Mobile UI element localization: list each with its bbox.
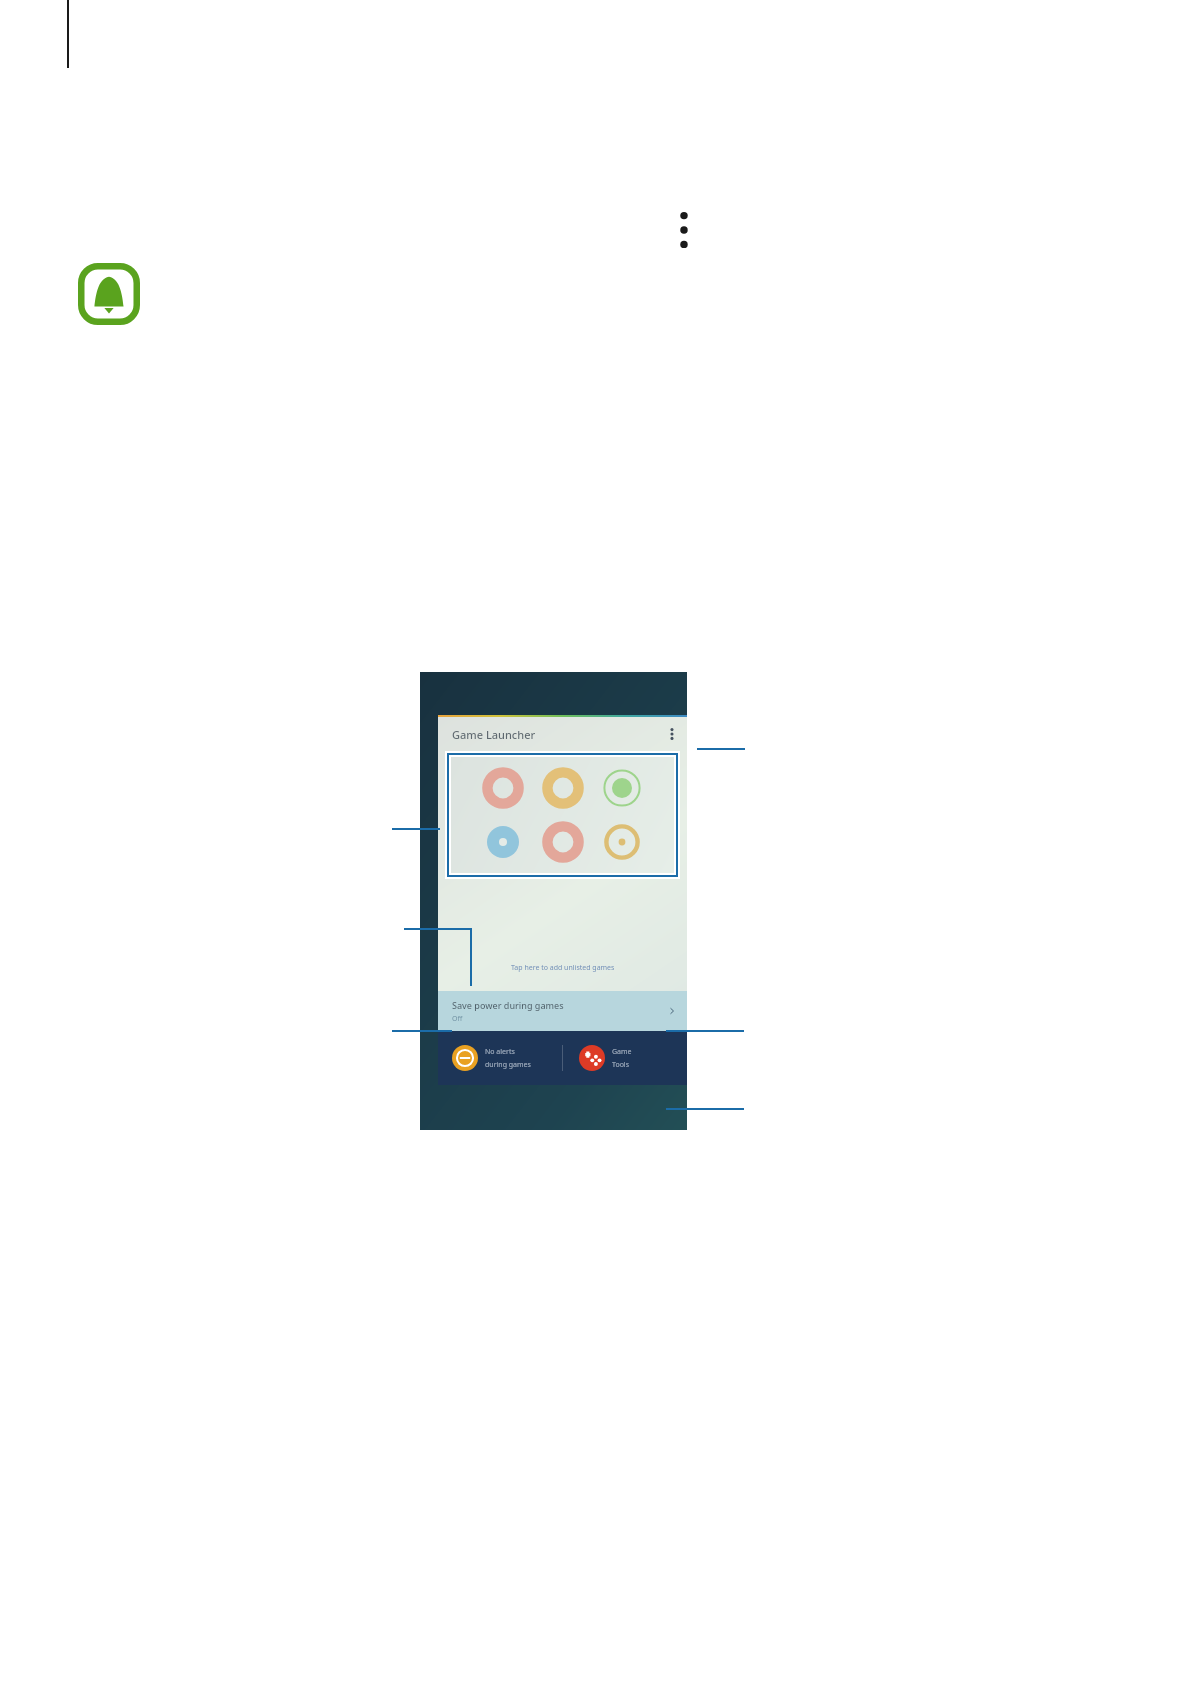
button[interactable]: Notice [78,263,140,325]
button[interactable]: Game [483,768,523,808]
button[interactable]: More options [665,723,679,745]
staticText: Tap here to add unlisted games [511,963,615,973]
button[interactable]: More options [672,206,696,254]
button[interactable]: No alerts [452,1031,562,1085]
staticText: Game [612,1047,632,1057]
staticText: No alerts [485,1047,515,1057]
staticText: Game Launcher [452,727,536,742]
button[interactable]: Game [579,1031,687,1085]
staticText: Off [452,1014,463,1024]
button[interactable]: Game [602,768,642,808]
button[interactable]: Tap here to add unlisted games [438,951,687,985]
button[interactable]: Game [483,822,523,862]
button[interactable]: Game [602,822,642,862]
staticText: Tools [612,1060,630,1070]
staticText: during games [485,1060,531,1070]
button[interactable]: Game [543,768,583,808]
staticText: Save power during games [452,999,564,1011]
button[interactable]: Save power during games [452,991,677,1031]
button[interactable]: Game [543,822,583,862]
